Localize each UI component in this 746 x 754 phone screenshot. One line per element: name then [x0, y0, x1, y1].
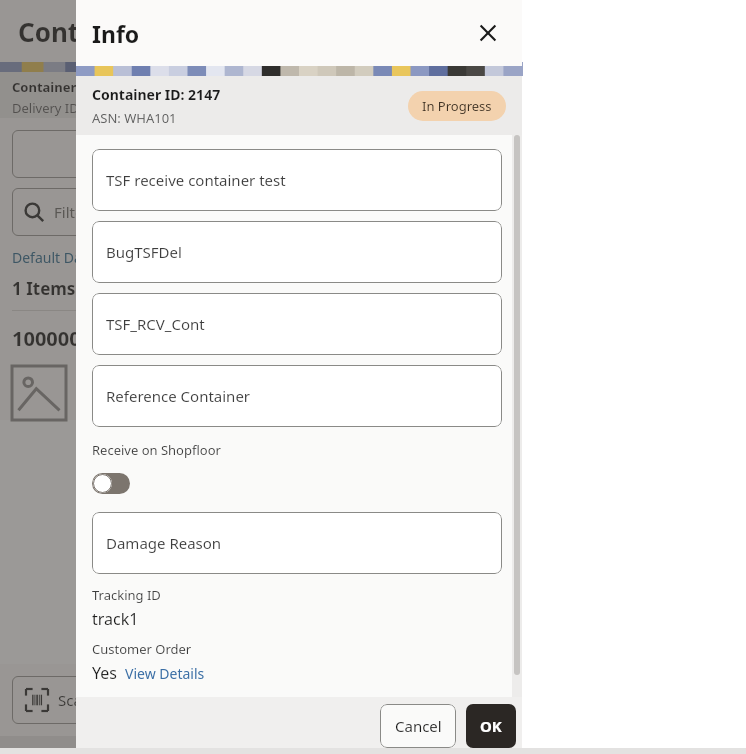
button[interactable]: BugTSFDel — [92, 221, 502, 283]
staticText: track1 — [92, 608, 139, 630]
staticText: 100000 — [12, 325, 81, 352]
staticText: Tracking ID — [92, 586, 161, 604]
staticText: Info — [92, 18, 140, 49]
button[interactable]: Filter — [12, 188, 510, 236]
button[interactable]: TSF_RCV_Cont — [92, 293, 502, 355]
button[interactable]: Receive on Shopfloor toggle — [92, 473, 130, 494]
staticText: Filter — [54, 202, 90, 222]
staticText: Container ID — [12, 78, 95, 96]
staticText: Damage Reason — [106, 533, 222, 553]
staticText: Customer Order — [92, 640, 192, 658]
button[interactable]: Reference Container — [92, 365, 502, 427]
staticText: ASN: WHA101 — [92, 109, 177, 127]
button[interactable] — [12, 130, 510, 178]
staticText: View Details — [125, 664, 205, 683]
staticText: Yes — [92, 662, 117, 684]
button[interactable]: TSF receive container test — [92, 149, 502, 211]
staticText: Receive on Shopfloor — [92, 441, 221, 459]
staticText: Container ID: 2147 — [92, 85, 221, 104]
staticText: Cancel — [395, 716, 442, 736]
staticText: OK — [480, 716, 502, 736]
staticText: Default Da — [12, 248, 82, 267]
button[interactable]: Scan — [12, 676, 106, 724]
button[interactable]: In Progress — [408, 91, 506, 121]
button[interactable]: Damage Reason — [92, 512, 502, 574]
button[interactable]: Close — [470, 15, 506, 51]
staticText: Scan — [58, 690, 92, 710]
staticText: TSF receive container test — [106, 170, 286, 190]
staticText: BugTSFDel — [106, 242, 182, 262]
staticText: 1 Items — [12, 277, 76, 300]
staticText: In Progress — [422, 97, 492, 115]
staticText: Delivery ID: — [12, 99, 83, 117]
staticText: Container — [18, 14, 147, 49]
staticText: Reference Container — [106, 386, 251, 406]
staticText: TSF_RCV_Cont — [106, 314, 205, 334]
button[interactable]: Cancel — [380, 704, 456, 748]
button[interactable]: OK — [466, 704, 516, 748]
button[interactable]: View Details — [125, 664, 205, 683]
